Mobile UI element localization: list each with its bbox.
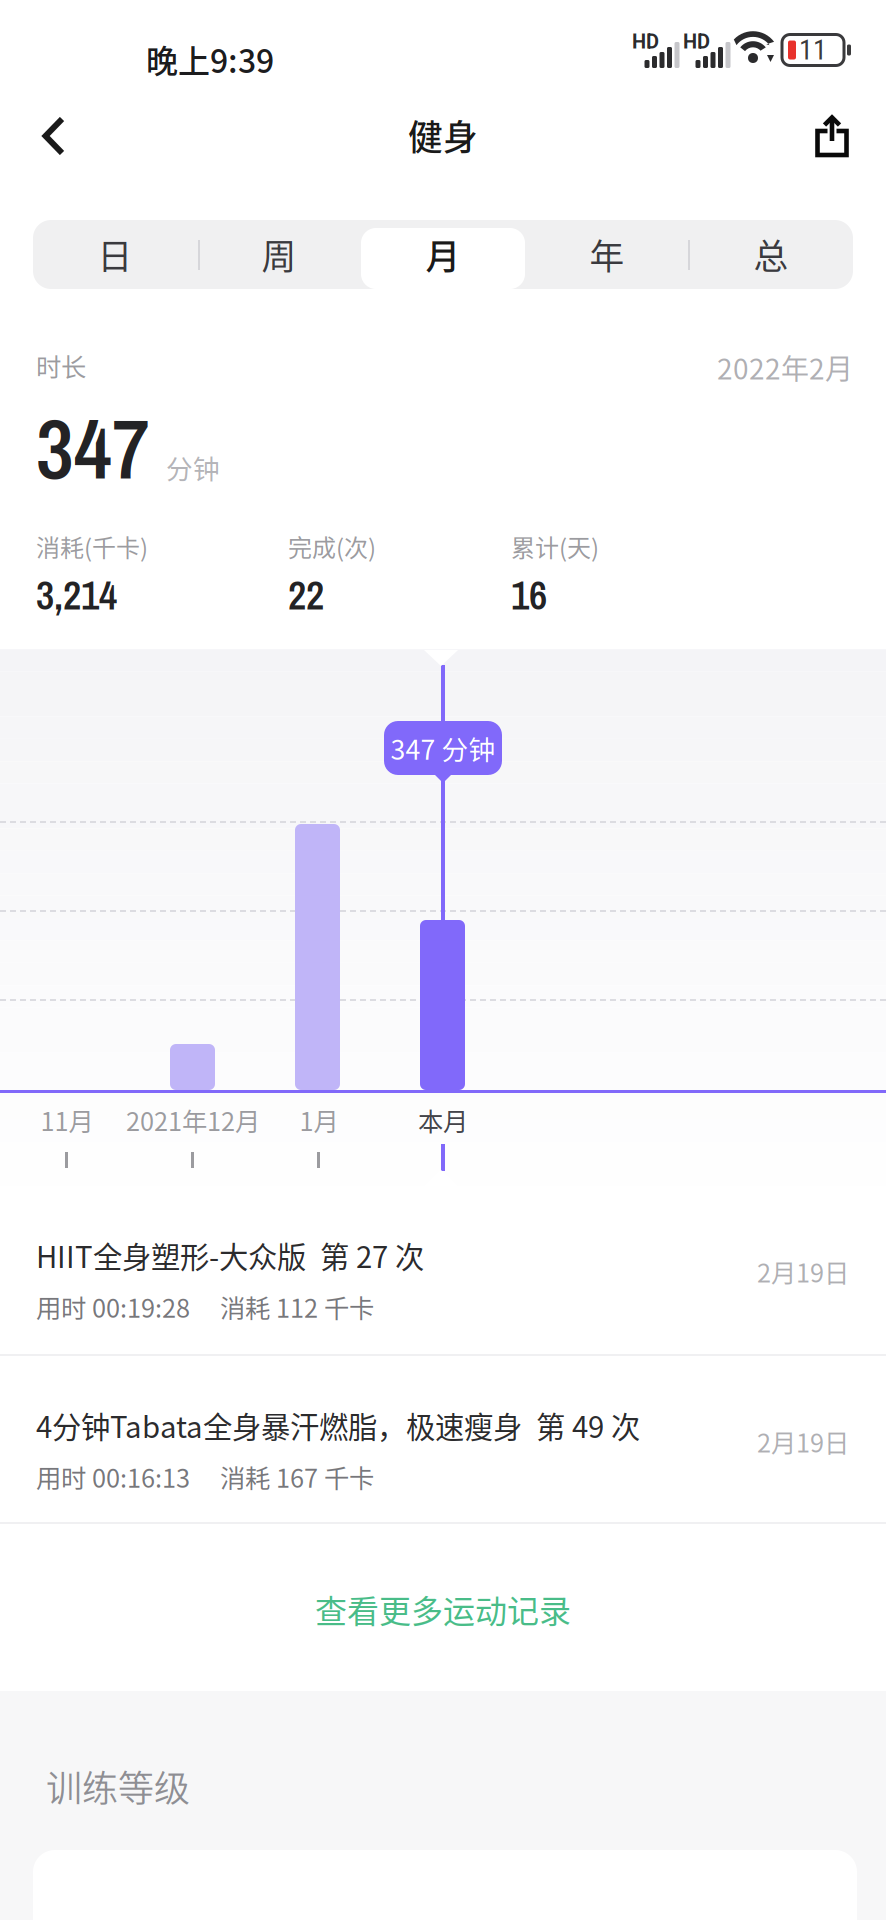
staticText: 2月19日 [757, 1253, 849, 1290]
button[interactable]: 总 [689, 220, 853, 289]
staticText: 完成(次) [288, 529, 376, 564]
staticText: 22 [288, 568, 324, 622]
staticText: 2022年2月 [717, 347, 853, 387]
staticText: 消耗(千卡) [36, 529, 148, 564]
staticText: HIIT全身塑形-大众版 第 27 次 [36, 1234, 424, 1276]
staticText: 2月19日 [757, 1423, 849, 1460]
staticText: 用时 00:16:13 消耗 167 千卡 [36, 1458, 374, 1495]
staticText: 11月 [40, 1102, 93, 1138]
staticText: 16 [511, 568, 547, 622]
staticText: HD [683, 30, 710, 53]
staticText: 11 [799, 34, 827, 66]
button[interactable]: 周 [197, 220, 361, 289]
staticText: 训练等级 [46, 1760, 190, 1812]
staticText: 3,214 [36, 568, 117, 622]
button[interactable]: 年 [525, 220, 689, 289]
staticText: 347 分钟 [390, 729, 495, 767]
staticText: 累计(天) [511, 529, 599, 564]
staticText: 周 [261, 229, 296, 280]
staticText: 分钟 [166, 448, 220, 487]
staticText: 用时 00:19:28 消耗 112 千卡 [36, 1288, 374, 1325]
button[interactable]: 日 [33, 220, 197, 289]
staticText: 健身 [408, 110, 478, 160]
button[interactable]: 月 [361, 220, 525, 289]
staticText: HD [632, 30, 659, 53]
button[interactable]: 查看更多运动记录 [0, 1524, 886, 1694]
button[interactable]: 分享 [788, 92, 876, 180]
staticText: 2021年12月 [126, 1102, 260, 1138]
staticText: 查看更多运动记录 [315, 1586, 571, 1632]
staticText: 月 [425, 229, 460, 280]
staticText: 4分钟Tabata全身暴汗燃脂，极速瘦身 第 49 次 [36, 1404, 640, 1446]
staticText: 本月 [418, 1102, 468, 1138]
staticText: 时长 [36, 347, 86, 384]
staticText: 1月 [299, 1102, 338, 1138]
staticText: 日 [97, 229, 132, 280]
button[interactable]: 4分钟Tabata全身暴汗燃脂，极速瘦身 第 49 次 [0, 1356, 886, 1521]
staticText: 晚上9:39 [146, 36, 274, 82]
staticText: 年 [589, 229, 624, 280]
button[interactable]: HIIT全身塑形-大众版 第 27 次 [0, 1186, 886, 1351]
button[interactable]: 返回 [10, 92, 98, 180]
staticText: 347 [36, 393, 150, 504]
staticText: 总 [753, 229, 788, 280]
